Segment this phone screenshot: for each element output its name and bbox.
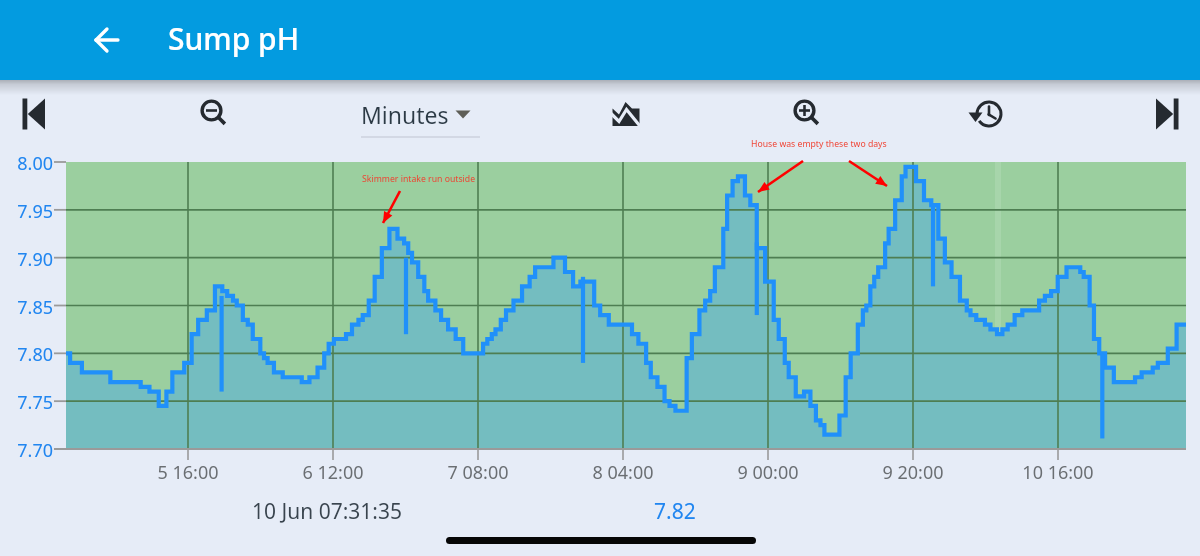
button[interactable]: Jump to end bbox=[1143, 90, 1191, 138]
staticText: 7.90 bbox=[3, 247, 53, 272]
staticText: 7.82 bbox=[654, 497, 696, 526]
button[interactable]: History bbox=[964, 90, 1012, 138]
staticText: 8 04:00 bbox=[563, 460, 683, 485]
button[interactable]: Zoom in bbox=[783, 89, 831, 137]
button[interactable]: Jump to start bbox=[10, 90, 58, 138]
staticText: 5 16:00 bbox=[128, 460, 248, 485]
staticText: 7 08:00 bbox=[418, 460, 538, 485]
staticText: 7.80 bbox=[3, 342, 53, 367]
staticText: 7.75 bbox=[3, 390, 53, 415]
staticText: 7.70 bbox=[3, 438, 53, 463]
staticText: 10 Jun 07:31:35 bbox=[252, 497, 402, 526]
staticText: 8.00 bbox=[3, 151, 53, 176]
staticText: 10 16:00 bbox=[998, 460, 1118, 485]
staticText: 7.95 bbox=[3, 199, 53, 224]
button[interactable]: Zoom out bbox=[190, 89, 238, 137]
staticText: Skimmer intake run outside bbox=[362, 173, 476, 185]
staticText: House was empty these two days bbox=[751, 138, 887, 150]
button[interactable]: Chart style bbox=[602, 90, 650, 138]
staticText: Sump pH bbox=[168, 18, 300, 59]
button[interactable]: 7.82 bbox=[625, 494, 725, 528]
staticText: 9 00:00 bbox=[708, 460, 828, 485]
button[interactable]: Back bbox=[83, 16, 131, 64]
button[interactable]: 10 Jun 07:31:35 bbox=[212, 494, 442, 528]
staticText: 9 20:00 bbox=[853, 460, 973, 485]
staticText: 6 12:00 bbox=[273, 460, 393, 485]
staticText: Minutes bbox=[361, 99, 449, 130]
button[interactable]: Minutes bbox=[358, 88, 480, 140]
staticText: 7.85 bbox=[3, 295, 53, 320]
